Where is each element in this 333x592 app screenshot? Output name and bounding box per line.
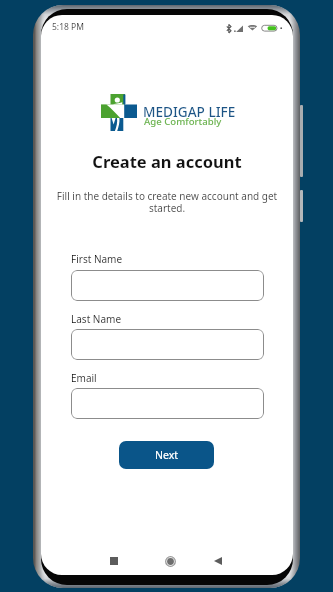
button[interactable]: Home: [159, 550, 181, 572]
button[interactable]: Next: [119, 441, 214, 469]
button[interactable]: Recent apps: [103, 550, 125, 572]
staticText: Last Name: [71, 312, 122, 326]
staticText: MEDIGAP LIFE: [143, 102, 236, 121]
button[interactable]: [71, 329, 264, 360]
staticText: Create an account: [41, 150, 293, 172]
staticText: Email: [71, 371, 97, 385]
staticText: Age Comfortably: [144, 115, 222, 128]
staticText: Next: [155, 448, 179, 462]
staticText: First Name: [71, 252, 123, 266]
button[interactable]: Back: [207, 550, 229, 572]
button[interactable]: [71, 270, 264, 301]
button[interactable]: [71, 388, 264, 419]
staticText: Fill in the details to create new accoun…: [51, 189, 283, 215]
staticText: 5:18 PM: [52, 21, 84, 33]
